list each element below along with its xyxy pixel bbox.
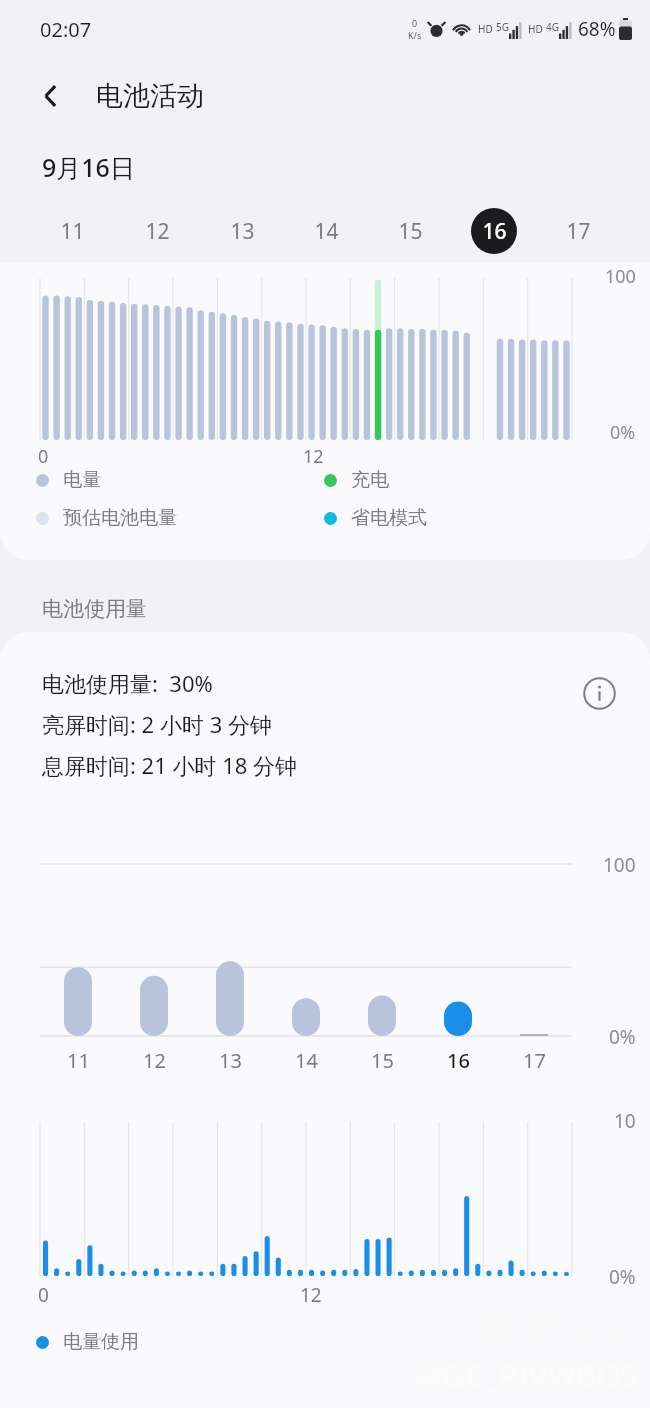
button[interactable]: 充电 — [324, 468, 444, 492]
button[interactable]: 省电模式 — [324, 506, 444, 530]
staticText: 12 — [300, 1282, 322, 1308]
staticText: 15 — [371, 1047, 394, 1074]
staticText: 0% — [610, 420, 636, 445]
staticText: 100 — [603, 852, 636, 878]
button[interactable]: 11 — [30, 200, 115, 262]
staticText: K/s — [408, 29, 422, 41]
staticText: 11 — [67, 1047, 90, 1074]
staticText: HD — [478, 22, 493, 36]
staticText: 12 — [145, 217, 170, 246]
staticText: 9月16日 — [42, 150, 135, 184]
button[interactable]: 17 — [536, 200, 620, 262]
button[interactable]: Back — [26, 70, 78, 122]
staticText: 68% — [578, 16, 616, 42]
staticText: 4G — [546, 20, 559, 34]
staticText: 16 — [482, 217, 507, 246]
staticText: 11 — [60, 217, 85, 246]
button[interactable]: 12 — [115, 200, 200, 262]
staticText: HD — [528, 22, 543, 36]
staticText: 息屏时间: 21 小时 18 分钟 — [42, 750, 298, 780]
staticText: 0 — [38, 444, 49, 469]
button[interactable]: 15 — [368, 200, 452, 262]
staticText: 15 — [398, 217, 423, 246]
button[interactable]: 14 — [284, 200, 368, 262]
staticText: 100 — [605, 264, 636, 289]
staticText: 17 — [566, 217, 591, 246]
staticText: 10 — [614, 1108, 636, 1134]
staticText: 充电 — [351, 468, 389, 492]
staticText: 12 — [303, 444, 324, 469]
staticText: 0% — [609, 1024, 636, 1050]
staticText: 电量 — [63, 468, 101, 492]
button[interactable]: Info — [576, 670, 622, 716]
button[interactable]: 13 — [200, 200, 284, 262]
button[interactable]: 预估电池电量 — [36, 506, 196, 530]
staticText: 0% — [609, 1264, 636, 1290]
staticText: 预估电池电量 — [63, 506, 177, 530]
staticText: 0 — [38, 1282, 49, 1308]
staticText: 13 — [230, 217, 255, 246]
staticText: 电池使用量: 30% — [42, 668, 213, 698]
staticText: 省电模式 — [351, 506, 427, 530]
staticText: 17 — [523, 1047, 546, 1074]
button[interactable]: 电量 — [36, 468, 196, 492]
staticText: 电量使用 — [63, 1330, 139, 1354]
staticText: 电池活动 — [96, 79, 204, 113]
staticText: 电池使用量 — [42, 596, 147, 622]
staticText: 14 — [314, 217, 339, 246]
staticText: 14 — [295, 1047, 318, 1074]
staticText: 0 — [412, 17, 418, 29]
staticText: 5G — [496, 20, 509, 34]
button[interactable]: 16 — [452, 200, 536, 262]
staticText: 16 — [447, 1047, 470, 1074]
staticText: 亮屏时间: 2 小时 3 分钟 — [42, 709, 272, 739]
staticText: 13 — [219, 1047, 242, 1074]
staticText: 12 — [143, 1047, 166, 1074]
button[interactable]: 电量使用 — [36, 1330, 206, 1354]
staticText: 02:07 — [40, 16, 92, 43]
